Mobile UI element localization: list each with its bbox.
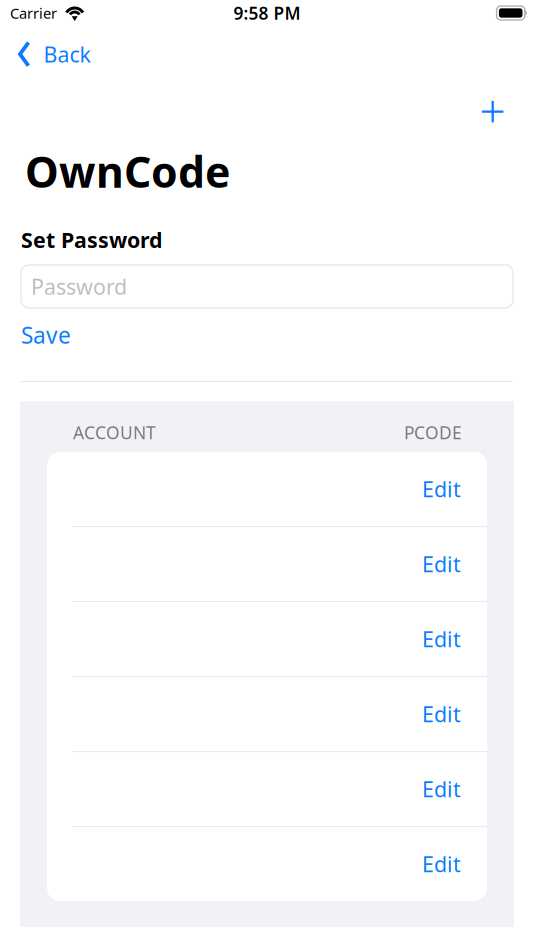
button[interactable]: Edit bbox=[396, 674, 487, 754]
button[interactable]: Edit bbox=[396, 599, 487, 679]
button[interactable]: Back bbox=[0, 34, 104, 74]
button[interactable]: Edit bbox=[396, 749, 487, 829]
staticText: 9:58 PM bbox=[233, 1, 300, 24]
staticText: Password bbox=[31, 272, 127, 301]
staticText: Edit bbox=[422, 475, 461, 503]
button[interactable]: Save bbox=[0, 314, 85, 356]
staticText: Back bbox=[43, 40, 90, 68]
staticText: PCODE bbox=[404, 421, 462, 444]
staticText: Set Password bbox=[21, 226, 162, 254]
button[interactable]: Password bbox=[0, 265, 534, 308]
button[interactable]: Edit bbox=[396, 824, 487, 904]
staticText: Edit bbox=[422, 625, 461, 653]
button[interactable]: Edit bbox=[396, 449, 487, 529]
staticText: Carrier bbox=[10, 3, 57, 23]
staticText: Edit bbox=[422, 700, 461, 728]
staticText: Edit bbox=[422, 775, 461, 803]
staticText: ACCOUNT bbox=[73, 421, 156, 444]
staticText: Save bbox=[21, 320, 71, 350]
staticText: Edit bbox=[422, 550, 461, 578]
button[interactable]: Edit bbox=[396, 524, 487, 604]
staticText: OwnCode bbox=[25, 143, 230, 200]
staticText: Edit bbox=[422, 850, 461, 878]
button[interactable]: Add bbox=[470, 89, 515, 134]
